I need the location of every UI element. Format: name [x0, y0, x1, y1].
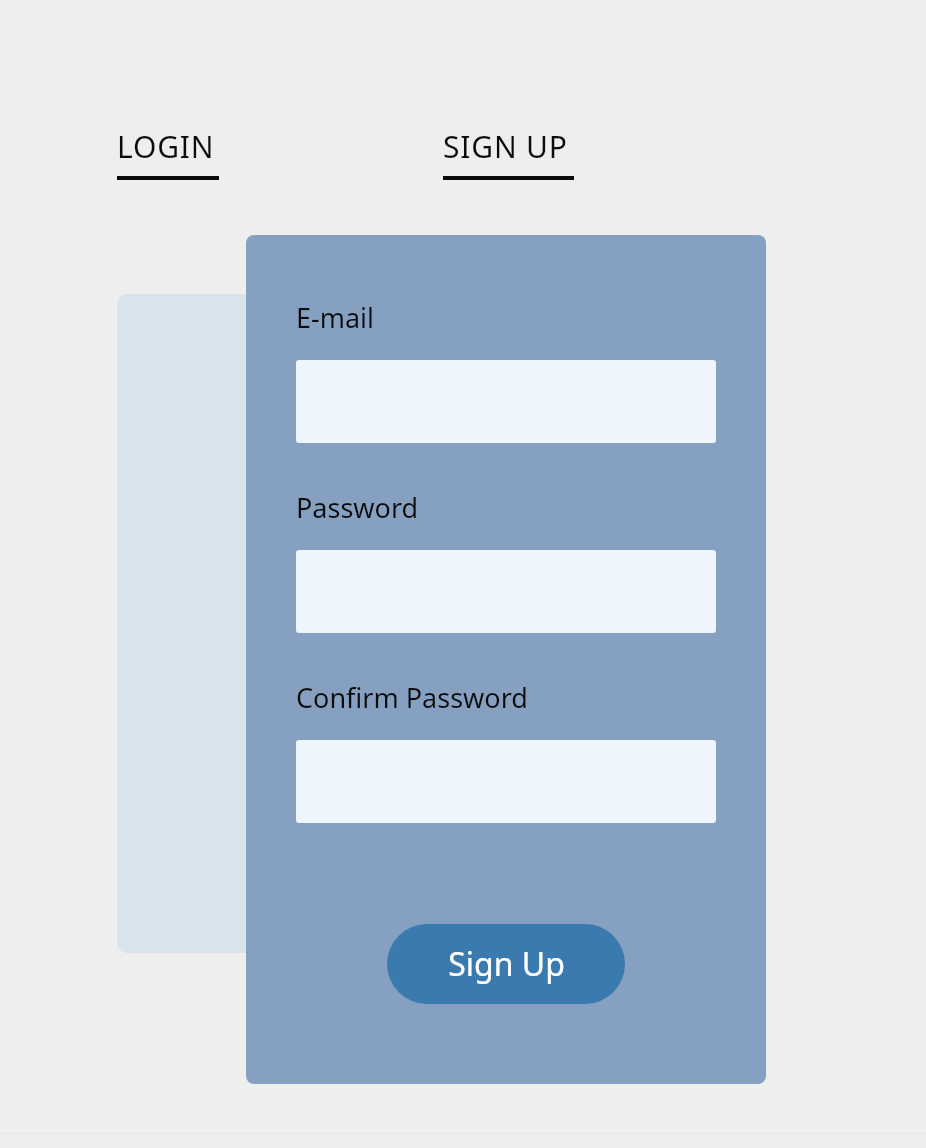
button[interactable]: SIGN UP [443, 126, 574, 180]
staticText: E-mail [296, 299, 375, 336]
staticText: Password [296, 489, 419, 526]
button[interactable]: LOGIN [117, 126, 219, 180]
button[interactable] [117, 294, 406, 953]
staticText: Sign Up [448, 942, 565, 986]
staticText: SIGN UP [443, 126, 568, 167]
button[interactable]: Sign Up [387, 924, 625, 1004]
staticText: Confirm Password [296, 679, 528, 716]
staticText: LOGIN [117, 126, 215, 167]
